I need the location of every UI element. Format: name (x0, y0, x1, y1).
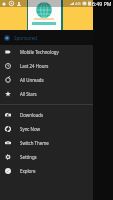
button[interactable]: Explore (0, 164, 93, 178)
staticText: All Stars (20, 91, 37, 97)
staticText: Sync Now (20, 126, 40, 132)
staticText: Downloads (20, 112, 43, 118)
button[interactable]: Sync Now (0, 122, 93, 136)
staticText: Sponsored (14, 35, 38, 41)
button[interactable]: Downloads (0, 108, 93, 122)
staticText: Settings (20, 154, 37, 160)
staticText: Mobile Technology (20, 49, 59, 55)
button[interactable]: Settings (0, 150, 93, 164)
staticText: 6:49 PM (92, 0, 112, 7)
staticText: Switch Theme (20, 140, 49, 146)
staticText: 4G (75, 1, 81, 7)
button[interactable]: Last 24 Hours (0, 59, 93, 73)
button[interactable]: All Unreads (0, 73, 93, 87)
staticText: Last 24 Hours (20, 63, 49, 69)
button[interactable]: All Stars (0, 87, 93, 101)
button[interactable]: Sponsored (0, 30, 93, 45)
button[interactable]: Mobile Technology (0, 45, 93, 59)
button[interactable]: Switch Theme (0, 136, 93, 150)
staticText: Explore (20, 168, 36, 174)
staticText: All Unreads (20, 77, 44, 83)
button[interactable] (0, 0, 93, 30)
